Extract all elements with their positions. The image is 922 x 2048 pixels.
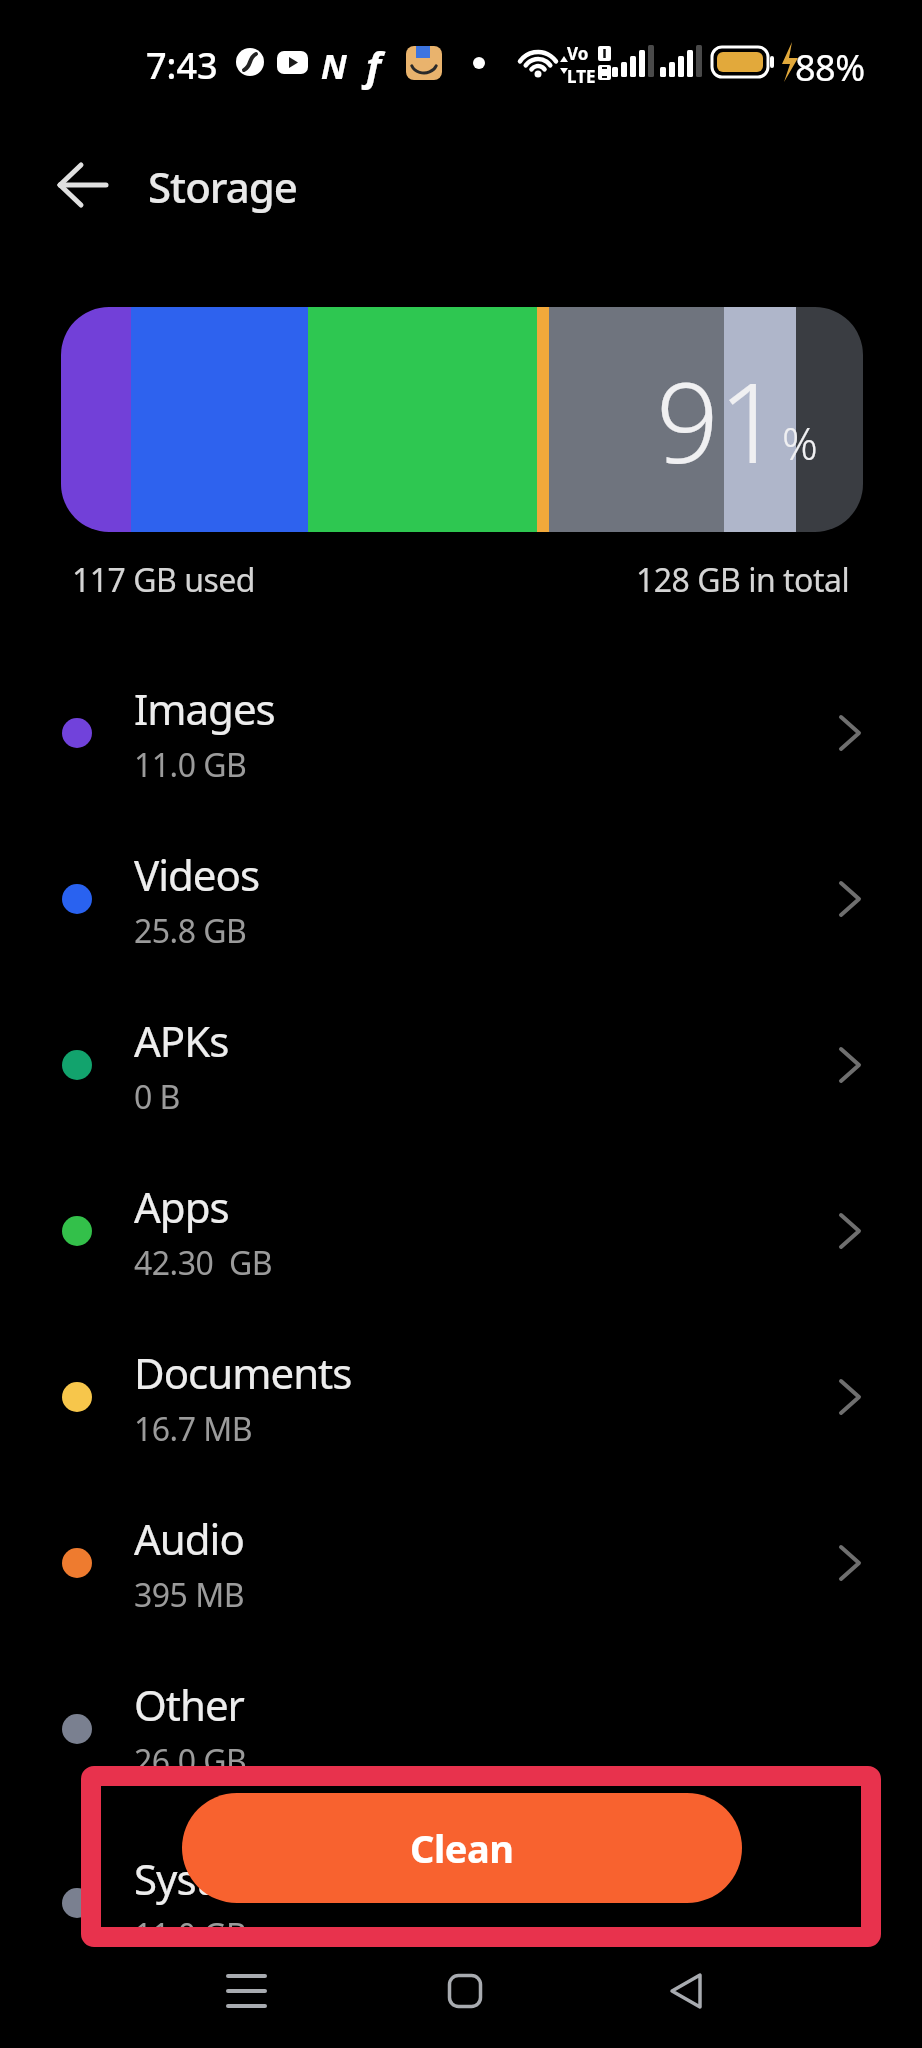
button[interactable]: Videos bbox=[0, 816, 922, 982]
staticText: 91 bbox=[656, 345, 782, 495]
staticText: 395 MB bbox=[134, 1573, 245, 1617]
staticText: 11.0 GB bbox=[134, 743, 247, 787]
staticText: 117 GB used bbox=[72, 558, 255, 602]
staticText: N bbox=[321, 43, 347, 89]
staticText: Clean bbox=[410, 1822, 514, 1874]
staticText: Audio bbox=[134, 1510, 244, 1567]
staticText: APKs bbox=[134, 1012, 229, 1069]
staticText: 25.8 GB bbox=[134, 909, 247, 953]
button[interactable]: Apps bbox=[0, 1148, 922, 1314]
staticText: 88% bbox=[795, 43, 865, 92]
staticText: System bbox=[134, 1850, 271, 1907]
staticText: 11.0 GB bbox=[134, 1913, 247, 1957]
staticText: Other bbox=[134, 1676, 244, 1733]
staticText: Apps bbox=[134, 1178, 229, 1235]
staticText: LTE bbox=[567, 65, 596, 88]
button[interactable]: System bbox=[0, 1820, 922, 1986]
staticText: Documents bbox=[134, 1344, 352, 1401]
staticText: 26.0 GB bbox=[134, 1739, 247, 1783]
button[interactable]: Audio bbox=[0, 1480, 922, 1646]
staticText: 16.7 MB bbox=[134, 1407, 253, 1451]
staticText: 7:43 bbox=[146, 41, 218, 90]
button[interactable] bbox=[40, 150, 130, 220]
button[interactable] bbox=[626, 1955, 746, 2027]
button[interactable]: Documents bbox=[0, 1314, 922, 1480]
staticText: Vo bbox=[567, 42, 589, 65]
button[interactable]: Images bbox=[0, 650, 922, 816]
staticText: f bbox=[366, 38, 381, 92]
button[interactable]: Other bbox=[0, 1646, 922, 1812]
button[interactable]: Clean bbox=[182, 1793, 742, 1903]
button[interactable] bbox=[187, 1955, 307, 2027]
button[interactable]: APKs bbox=[0, 982, 922, 1148]
staticText: 128 GB in total bbox=[636, 558, 850, 602]
staticText: Videos bbox=[134, 846, 260, 903]
staticText: Images bbox=[134, 680, 275, 737]
staticText: Storage bbox=[148, 158, 297, 215]
staticText: % bbox=[782, 413, 818, 473]
staticText: 0 B bbox=[134, 1075, 180, 1119]
button[interactable] bbox=[405, 1955, 525, 2027]
staticText: 42.30 GB bbox=[134, 1241, 273, 1285]
